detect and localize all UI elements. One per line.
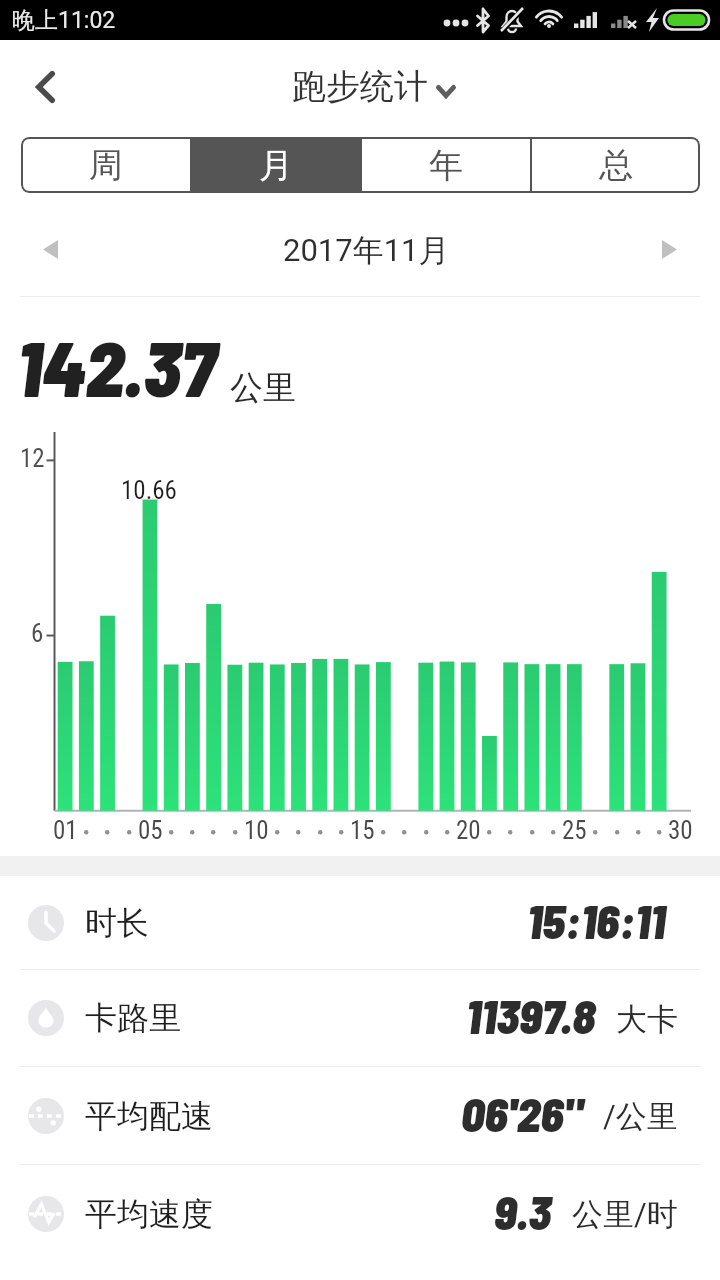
staticText: 10	[244, 816, 269, 845]
staticText: 2017年11月	[283, 231, 450, 270]
staticText: 平均配速	[85, 1096, 213, 1136]
staticText: 12	[20, 444, 45, 473]
staticText: 15	[350, 816, 375, 845]
staticText: 平均速度	[85, 1194, 213, 1234]
staticText: 周	[89, 144, 123, 187]
staticText: 总	[599, 144, 633, 187]
button[interactable]: 月	[192, 137, 360, 193]
staticText: 11397.8	[466, 987, 596, 1043]
staticText: 30	[668, 816, 693, 845]
button[interactable]: 平均速度	[0, 1165, 720, 1262]
button[interactable]: 周	[21, 137, 190, 193]
staticText: 跑步统计	[292, 65, 428, 108]
staticText: 公里/时	[572, 1195, 678, 1234]
staticText: 9.3	[494, 1183, 552, 1239]
staticText: 01	[53, 816, 78, 845]
staticText: 10.66	[121, 476, 177, 505]
staticText: 06'26"	[461, 1085, 583, 1141]
button[interactable]: Previous month	[10, 209, 90, 289]
button[interactable]: 总	[532, 137, 700, 193]
button[interactable]: 跑步统计	[292, 65, 456, 108]
button[interactable]: Back	[10, 40, 82, 132]
staticText: /公里	[603, 1097, 678, 1136]
staticText: 年	[429, 144, 463, 187]
button[interactable]: 年	[362, 137, 530, 193]
staticText: 卡路里	[85, 998, 181, 1038]
staticText: 20	[456, 816, 481, 845]
staticText: 05	[138, 816, 163, 845]
button[interactable]: 卡路里	[0, 970, 720, 1066]
button[interactable]: 平均配速	[0, 1067, 720, 1164]
button[interactable]: Next month	[629, 209, 709, 289]
staticText: 6	[31, 619, 44, 648]
button[interactable]: 时长	[0, 876, 720, 969]
staticText: 大卡	[616, 1000, 678, 1039]
staticText: 25	[562, 816, 587, 845]
staticText: 时长	[85, 903, 149, 943]
staticText: 晚上11:02	[12, 6, 116, 35]
staticText: 15:16:11	[527, 892, 666, 948]
staticText: 月	[259, 144, 293, 187]
staticText: 142.37	[17, 320, 217, 412]
staticText: 公里	[230, 367, 296, 409]
